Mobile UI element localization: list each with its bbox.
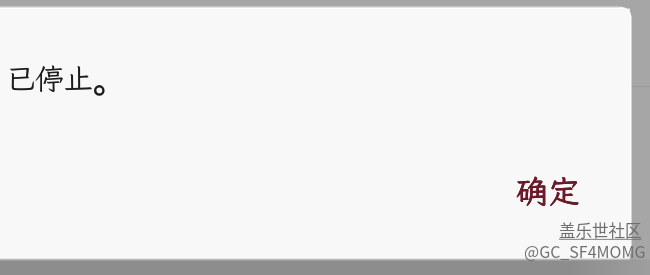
staticText: @GC_SF4MOMG [524, 239, 646, 262]
staticText: 确定 [516, 170, 581, 212]
staticText: 已停止 [6, 59, 94, 97]
staticText: 盖乐世社区 [559, 218, 642, 242]
staticText: 确定 [516, 170, 581, 212]
button[interactable]: 确定 [498, 162, 600, 212]
staticText: 已停止 [6, 59, 94, 97]
staticText: 确定 [516, 170, 581, 212]
staticText: 确定 [516, 170, 581, 212]
